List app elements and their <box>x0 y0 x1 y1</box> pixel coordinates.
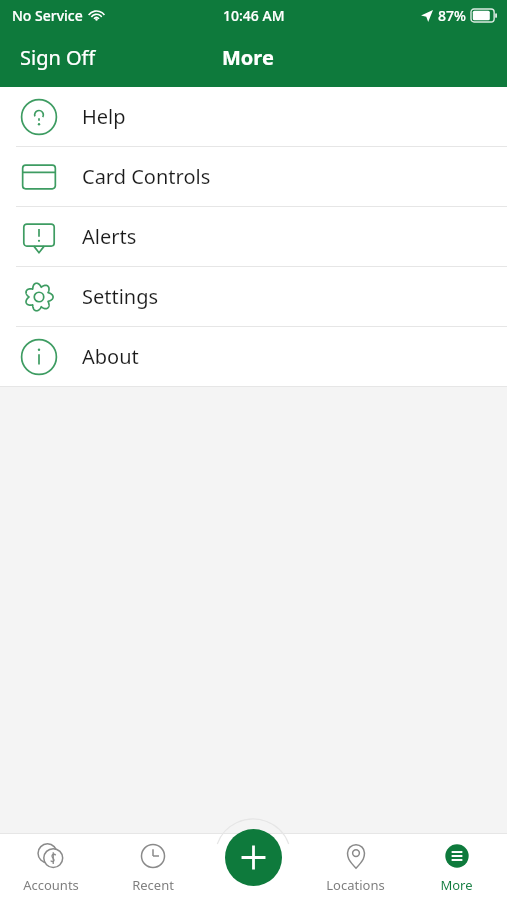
button[interactable]: Sign Off <box>0 36 116 79</box>
staticText: No Service <box>12 6 83 25</box>
staticText: Accounts <box>23 876 79 894</box>
staticText: Card Controls <box>82 163 211 190</box>
staticText: Settings <box>82 283 159 310</box>
button[interactable]: Help <box>0 87 507 146</box>
staticText: Locations <box>326 876 385 894</box>
button[interactable]: Settings <box>0 267 507 326</box>
button[interactable]: Accounts <box>0 840 102 894</box>
staticText: Help <box>82 103 126 130</box>
staticText: More <box>440 876 473 894</box>
staticText: 10:46 AM <box>223 6 285 25</box>
staticText: Recent <box>132 876 174 894</box>
button[interactable]: Recent <box>102 840 204 894</box>
button[interactable]: Alerts <box>0 207 507 266</box>
staticText: 87% <box>438 6 466 25</box>
button[interactable]: Card Controls <box>0 147 507 206</box>
staticText: Alerts <box>82 223 137 250</box>
staticText: Sign Off <box>20 44 96 71</box>
button[interactable]: About <box>0 327 507 386</box>
staticText: About <box>82 343 139 370</box>
button[interactable]: Add <box>225 829 282 886</box>
button[interactable]: Locations <box>305 840 406 894</box>
button[interactable]: More <box>406 840 507 894</box>
staticText: More <box>222 44 274 71</box>
